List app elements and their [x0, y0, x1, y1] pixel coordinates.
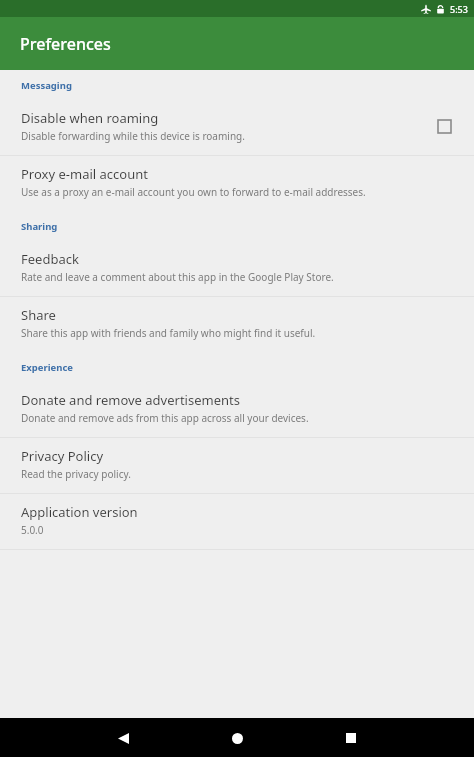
staticText: Disable forwarding while this device is … [21, 129, 245, 143]
staticText: Use as a proxy an e-mail account you own… [21, 185, 366, 199]
button[interactable]: Disable when roaming checkbox [430, 112, 458, 140]
staticText: Feedback [21, 250, 79, 268]
staticText: Donate and remove ads from this app acro… [21, 411, 309, 425]
staticText: Experience [21, 361, 73, 374]
staticText: Proxy e-mail account [21, 165, 148, 183]
button[interactable]: Back [105, 720, 141, 756]
staticText: Donate and remove advertisements [21, 391, 240, 409]
button[interactable]: Donate and remove advertisements [0, 382, 474, 437]
staticText: 5.0.0 [21, 523, 44, 537]
staticText: Privacy Policy [21, 447, 104, 465]
staticText: Application version [21, 503, 138, 521]
button[interactable]: Feedback [0, 241, 474, 296]
button[interactable]: Share [0, 297, 474, 352]
button[interactable]: Privacy Policy [0, 438, 474, 493]
button[interactable]: Home [219, 720, 255, 756]
button[interactable]: Application version [0, 494, 474, 549]
staticText: 5:53 [450, 3, 468, 15]
button[interactable]: Proxy e-mail account [0, 156, 474, 211]
staticText: Preferences [20, 33, 111, 55]
button[interactable]: Disable when roaming [0, 100, 474, 155]
staticText: Read the privacy policy. [21, 467, 131, 481]
staticText: Rate and leave a comment about this app … [21, 270, 334, 284]
staticText: Disable when roaming [21, 109, 159, 127]
staticText: Share this app with friends and family w… [21, 326, 316, 340]
button[interactable]: Recent apps [333, 720, 369, 756]
staticText: Sharing [21, 220, 58, 233]
staticText: Messaging [21, 79, 72, 92]
staticText: Share [21, 306, 56, 324]
